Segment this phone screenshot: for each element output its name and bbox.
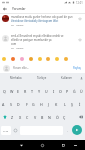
staticText: K — [55, 102, 58, 107]
button[interactable]: Emoji — [64, 57, 68, 61]
staticText: Ü — [80, 89, 83, 94]
staticText: I — [53, 89, 55, 94]
button[interactable]: K — [53, 98, 60, 110]
staticText: emiLa13musthed enyuki ellinkkw vedeki ve — [11, 34, 64, 38]
staticText: Yorumlar — [12, 7, 26, 11]
button[interactable]: C — [24, 111, 31, 123]
staticText: Ö — [56, 115, 59, 120]
staticText: ellinkk ve pastgun mumkunbir ya — [11, 38, 52, 42]
button[interactable]: Recents — [58, 140, 68, 150]
button[interactable]: G — [30, 98, 37, 110]
staticText: J — [48, 102, 50, 107]
staticText: E — [17, 89, 20, 94]
button[interactable]: F — [23, 98, 30, 110]
button[interactable]: Ö — [54, 111, 61, 123]
staticText: com — [11, 42, 17, 46]
staticText: Q — [3, 89, 6, 94]
staticText: N — [48, 115, 51, 120]
button[interactable]: Q — [1, 85, 8, 97]
button[interactable]: Emoji — [29, 57, 33, 61]
staticText: D — [17, 102, 20, 107]
staticText: #instalove #instadaily #instagram #tbt — [11, 19, 59, 23]
button[interactable]: N — [46, 111, 53, 123]
button[interactable]: Emoji keyboard — [12, 126, 19, 135]
button[interactable]: O — [57, 85, 64, 97]
staticText: . — [67, 129, 68, 133]
button[interactable]: Paylaş — [72, 65, 82, 71]
staticText: İ — [79, 102, 81, 107]
button[interactable]: T — [29, 85, 36, 97]
staticText: Yorum ekle... — [13, 66, 29, 70]
button[interactable]: Like — [78, 38, 82, 42]
button[interactable]: R — [22, 85, 29, 97]
staticText: Ğ — [73, 89, 76, 94]
staticText: Yanıtla — [16, 24, 24, 27]
button[interactable]: Back — [1, 5, 9, 13]
staticText: L — [64, 102, 66, 107]
button[interactable]: W — [8, 85, 15, 97]
staticText: Yanıtla — [16, 47, 24, 50]
staticText: Merhaba — [10, 76, 22, 80]
button[interactable]: Emoji — [55, 57, 59, 61]
button[interactable]: Back — [16, 140, 26, 150]
button[interactable]: Emoji — [20, 57, 24, 61]
button[interactable]: Home — [37, 140, 47, 150]
button[interactable]: Keyboard settings — [79, 77, 84, 80]
button[interactable]: Backspace — [76, 111, 85, 123]
button[interactable]: Z — [9, 111, 16, 123]
button[interactable]: B — [39, 111, 46, 123]
button[interactable]: Merhaba — [3, 76, 29, 80]
button[interactable]: Emoji — [46, 57, 50, 61]
staticText: Paylaş — [73, 66, 81, 70]
staticText: S — [10, 102, 12, 107]
staticText: A — [2, 102, 5, 107]
button[interactable]: Kullanım — [54, 76, 79, 80]
button[interactable]: Send — [72, 125, 82, 135]
staticText: X — [19, 115, 22, 120]
button[interactable]: U — [43, 85, 50, 97]
staticText: F — [26, 102, 28, 107]
button[interactable]: Ş — [68, 98, 75, 110]
button[interactable]: A — [0, 98, 7, 110]
staticText: 2g — [11, 24, 14, 27]
button[interactable]: Emoji — [11, 57, 15, 61]
staticText: G — [32, 102, 35, 107]
button[interactable]: V — [32, 111, 39, 123]
staticText: W — [10, 89, 14, 94]
staticText: muratkose mutlu gunler herkese cok guzel… — [11, 15, 77, 19]
button[interactable]: P — [64, 85, 71, 97]
staticText: Y — [38, 89, 41, 94]
staticText: P — [66, 89, 69, 94]
button[interactable]: L — [61, 98, 68, 110]
button[interactable]: Ü — [78, 85, 85, 97]
button[interactable]: X — [17, 111, 24, 123]
button[interactable]: Emoji — [2, 57, 6, 61]
staticText: Türkiye — [37, 76, 47, 80]
button[interactable]: D — [15, 98, 22, 110]
staticText: 2g — [11, 47, 14, 50]
button[interactable]: Emoji — [38, 57, 42, 61]
button[interactable]: J — [45, 98, 52, 110]
staticText: O — [59, 89, 62, 94]
button[interactable]: Shift — [0, 111, 9, 123]
staticText: U — [45, 89, 48, 94]
button[interactable]: ?123 — [1, 126, 11, 135]
staticText: 12:01 — [76, 1, 83, 5]
staticText: ?123 — [3, 129, 9, 132]
staticText: V — [34, 115, 37, 120]
button[interactable]: H — [38, 98, 45, 110]
button[interactable]: Türkiye — [29, 76, 54, 80]
button[interactable]: Y — [36, 85, 43, 97]
button[interactable]: Ç — [61, 111, 68, 123]
button[interactable]: Ğ — [71, 85, 78, 97]
button[interactable]: S — [7, 98, 14, 110]
button[interactable]: Switch keyboard — [70, 140, 80, 150]
staticText: Ç — [63, 115, 66, 120]
button[interactable]: Like — [78, 17, 82, 21]
button[interactable]: I — [50, 85, 57, 97]
button[interactable]: E — [15, 85, 22, 97]
button[interactable]: İ — [76, 98, 83, 110]
staticText: Kullanım — [61, 76, 73, 80]
